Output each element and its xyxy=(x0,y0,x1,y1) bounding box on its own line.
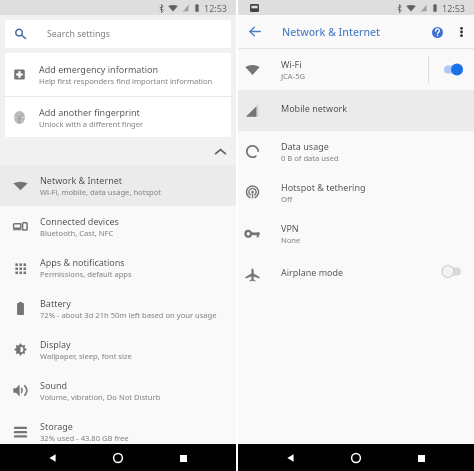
staticText: Search settings xyxy=(47,28,110,40)
button[interactable]: Wi-Fi toggle xyxy=(444,63,463,76)
button[interactable]: Mobile network xyxy=(238,90,474,131)
staticText: JCA-5G xyxy=(281,71,306,81)
staticText: 12:53 xyxy=(204,2,228,14)
button[interactable]: Display xyxy=(0,329,236,370)
staticText: Data usage xyxy=(281,140,329,152)
staticText: Bluetooth, Cast, NFC xyxy=(40,228,114,238)
staticText: Volume, vibration, Do Not Disturb xyxy=(40,392,161,402)
button[interactable]: Back xyxy=(282,450,298,466)
button[interactable]: Airplane mode xyxy=(238,254,474,295)
button[interactable]: Hotspot & tethering xyxy=(238,172,474,213)
button[interactable]: Connected devices xyxy=(0,206,236,247)
button[interactable]: VPN xyxy=(238,213,474,254)
staticText: Add another fingerprint xyxy=(39,106,140,118)
button[interactable]: Recents xyxy=(175,450,191,466)
button[interactable]: Wi-Fi xyxy=(238,49,474,90)
staticText: 72% - about 3d 21h 50m left based on you… xyxy=(40,310,217,320)
staticText: 32% used - 43.80 GB free xyxy=(40,433,129,443)
staticText: Network & Internet xyxy=(40,174,123,186)
staticText: Wi-Fi, mobile, data usage, hotspot xyxy=(40,187,162,197)
staticText: Battery xyxy=(40,297,71,309)
button[interactable]: Battery xyxy=(0,288,236,329)
staticText: Off xyxy=(281,194,293,204)
button[interactable]: Sound xyxy=(0,370,236,411)
staticText: Storage xyxy=(40,420,73,432)
button[interactable]: Network & Internet xyxy=(0,165,236,206)
button[interactable]: Collapse suggestions xyxy=(211,142,229,160)
staticText: Mobile network xyxy=(281,102,348,114)
button[interactable]: Help xyxy=(427,22,447,42)
button[interactable]: Back xyxy=(44,450,60,466)
button[interactable]: Add emergency information xyxy=(5,53,231,96)
staticText: Add emergency information xyxy=(39,63,158,75)
button[interactable]: Home xyxy=(110,450,126,466)
button[interactable]: Search settings xyxy=(5,20,231,48)
staticText: Hotspot & tethering xyxy=(281,181,366,193)
button[interactable]: Back xyxy=(244,21,265,42)
staticText: Wallpaper, sleep, font size xyxy=(40,351,132,361)
staticText: Connected devices xyxy=(40,215,119,227)
button[interactable]: More options xyxy=(452,23,470,41)
staticText: 0 B of data used xyxy=(281,153,339,163)
staticText: None xyxy=(281,235,301,245)
staticText: 12:53 xyxy=(442,2,466,14)
staticText: Wi-Fi xyxy=(281,58,302,70)
button[interactable]: Data usage xyxy=(238,131,474,172)
staticText: Network & Internet xyxy=(282,25,381,39)
staticText: Help first responders find important inf… xyxy=(39,76,213,86)
staticText: Sound xyxy=(40,379,68,391)
staticText: Permissions, default apps xyxy=(40,269,132,279)
staticText: Display xyxy=(40,338,71,350)
button[interactable]: Airplane mode toggle xyxy=(442,265,461,278)
button[interactable]: Home xyxy=(348,450,364,466)
button[interactable]: Apps & notifications xyxy=(0,247,236,288)
staticText: Unlock with a different finger xyxy=(39,119,144,129)
staticText: Apps & notifications xyxy=(40,256,125,268)
staticText: VPN xyxy=(281,222,299,234)
button[interactable]: Storage xyxy=(0,411,236,452)
button[interactable]: Add another fingerprint xyxy=(5,97,231,137)
button[interactable]: Recents xyxy=(413,450,429,466)
staticText: Airplane mode xyxy=(281,266,344,278)
